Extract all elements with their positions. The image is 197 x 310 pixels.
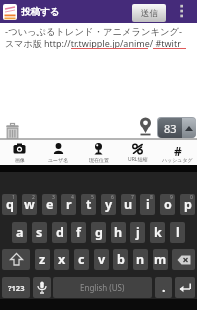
button[interactable]: y [101, 194, 116, 215]
staticText: g [95, 224, 103, 241]
button[interactable]: r [61, 194, 76, 215]
staticText: ユーザ名 [48, 157, 69, 163]
staticText: スマホ版 http://tr.twipple.jp/anime/ #twitr [5, 37, 181, 49]
staticText: 8 [150, 194, 153, 201]
button[interactable] [33, 277, 51, 298]
button[interactable]: # [158, 139, 197, 165]
button[interactable]: e [42, 194, 57, 215]
staticText: 7 [131, 194, 134, 201]
button[interactable]: z [35, 249, 50, 270]
staticText: 5 [91, 194, 94, 201]
staticText: 3 [52, 194, 55, 201]
staticText: b [117, 251, 125, 268]
button[interactable]: j [130, 222, 145, 243]
staticText: ?123 [8, 283, 25, 293]
staticText: d [56, 224, 64, 241]
staticText: w [24, 196, 35, 213]
button[interactable]: ユーザ名 [39, 139, 78, 165]
staticText: t [86, 196, 92, 213]
button[interactable]: 画像 [0, 139, 39, 165]
button[interactable]: a [12, 222, 27, 243]
staticText: ハッシュタグ [162, 157, 193, 163]
button[interactable]: s [32, 222, 47, 243]
staticText: m [154, 251, 167, 268]
button[interactable]: l [170, 222, 185, 243]
staticText: a [16, 224, 24, 241]
button[interactable] [175, 277, 195, 298]
staticText: 2 [32, 194, 35, 201]
staticText: 4 [71, 194, 74, 201]
staticText: k [154, 224, 162, 241]
staticText: r [66, 196, 72, 213]
staticText: q [6, 196, 14, 213]
staticText: URL短縮 [128, 156, 148, 163]
button[interactable]: n [133, 249, 148, 270]
button[interactable]: x [54, 249, 69, 270]
button[interactable]: w [22, 194, 37, 215]
staticText: n [136, 251, 145, 268]
button[interactable]: o [160, 194, 175, 215]
button[interactable]: d [52, 222, 67, 243]
button[interactable]: k [150, 222, 165, 243]
button[interactable]: f [71, 222, 86, 243]
button[interactable]: h [111, 222, 126, 243]
staticText: s [36, 224, 43, 241]
staticText: 投稿する [21, 6, 60, 18]
staticText: # [174, 143, 182, 159]
button[interactable]: m [153, 249, 168, 270]
staticText: h [114, 224, 123, 241]
staticText: 83 [164, 121, 177, 136]
staticText: o [164, 196, 172, 213]
staticText: v [98, 251, 106, 268]
button[interactable]: g [91, 222, 106, 243]
button[interactable] [182, 118, 196, 138]
button[interactable] [138, 116, 153, 138]
button[interactable]: 送信 [132, 4, 166, 22]
button[interactable]: v [94, 249, 109, 270]
staticText: c [78, 251, 85, 268]
staticText: English (US) [80, 282, 125, 293]
staticText: 現在位置 [89, 157, 109, 163]
staticText: 9 [170, 194, 173, 201]
staticText: z [39, 251, 46, 268]
staticText: e [46, 196, 54, 213]
button[interactable] [172, 249, 195, 270]
button[interactable]: ?123 [2, 277, 30, 298]
button[interactable]: b [113, 249, 128, 270]
button[interactable]: . [155, 277, 172, 298]
button[interactable]: c [74, 249, 89, 270]
staticText: 画像 [15, 157, 25, 163]
button[interactable]: u [121, 194, 136, 215]
staticText: 0 [190, 194, 193, 201]
staticText: l [176, 224, 180, 241]
button[interactable] [172, 0, 197, 22]
staticText: u [124, 196, 133, 213]
staticText: 1 [12, 194, 15, 201]
button[interactable] [2, 249, 30, 270]
staticText: j [136, 224, 140, 241]
button[interactable]: i [140, 194, 155, 215]
staticText: y [105, 196, 113, 213]
button[interactable]: t [81, 194, 96, 215]
staticText: x [58, 251, 66, 268]
button[interactable]: q [2, 194, 17, 215]
button[interactable]: English (US) [53, 277, 152, 298]
staticText: 送信 [141, 8, 158, 19]
staticText: 6 [111, 194, 114, 201]
button[interactable]: 現在位置 [79, 139, 118, 165]
staticText: f [76, 224, 81, 241]
button[interactable] [4, 122, 22, 141]
staticText: -ついっぷるトレンド・アニメランキング- [5, 25, 183, 38]
staticText: p [184, 196, 192, 213]
button[interactable]: p [180, 194, 195, 215]
button[interactable]: URL短縮 [118, 139, 157, 165]
staticText: . [162, 279, 166, 296]
staticText: i [146, 196, 150, 213]
